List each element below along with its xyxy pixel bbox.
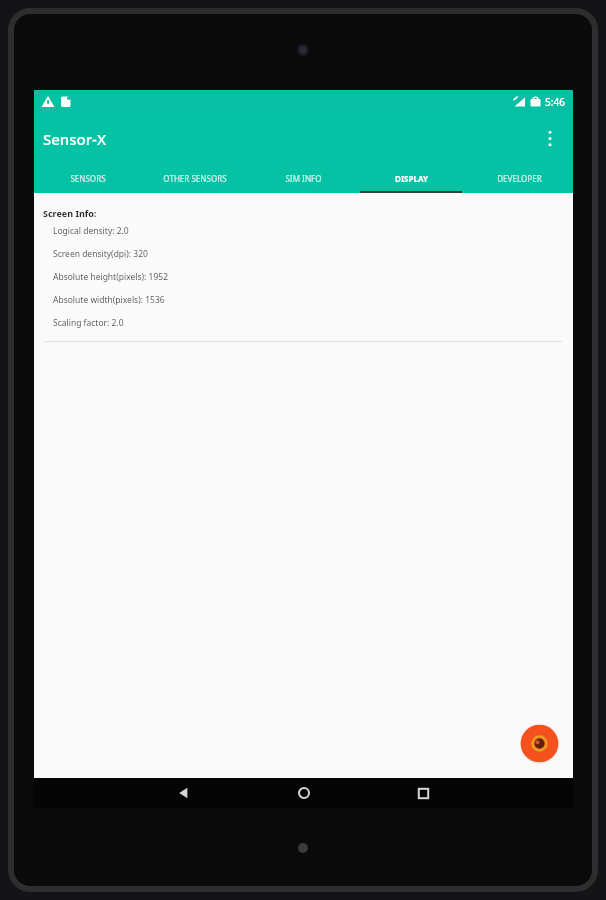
button[interactable]: Absolute width(pixels): 1536 (34, 288, 573, 311)
button[interactable]: Absolute height(pixels): 1952 (34, 265, 573, 288)
staticText: Scaling factor: 2.0 (53, 317, 124, 329)
button[interactable]: DISPLAY (357, 163, 465, 193)
button[interactable]: Recent apps (406, 778, 440, 808)
button[interactable]: More options (533, 121, 567, 155)
staticText: Absolute height(pixels): 1952 (53, 271, 169, 283)
staticText: SENSORS (70, 173, 106, 184)
button[interactable]: SENSORS (34, 163, 141, 193)
staticText: OTHER SENSORS (163, 173, 227, 184)
staticText: SIM INFO (285, 173, 322, 184)
button[interactable]: OTHER SENSORS (141, 163, 249, 193)
button[interactable]: DEVELOPER (465, 163, 573, 193)
button[interactable]: SIM INFO (249, 163, 357, 193)
staticText: DEVELOPER (497, 173, 542, 184)
staticText: Logical density: 2.0 (53, 225, 129, 237)
staticText: Screen Info: (43, 207, 97, 219)
staticText: Screen density(dpi): 320 (53, 248, 148, 260)
staticText: 5:46 (545, 95, 565, 109)
button[interactable]: Home (287, 778, 321, 808)
staticText: Sensor-X (43, 129, 107, 149)
button[interactable]: Back (167, 778, 201, 808)
button[interactable]: Refresh sensors (519, 723, 560, 764)
staticText: Absolute width(pixels): 1536 (53, 294, 165, 306)
staticText: DISPLAY (395, 173, 428, 184)
button[interactable]: Screen density(dpi): 320 (34, 242, 573, 265)
button[interactable]: Scaling factor: 2.0 (34, 311, 573, 334)
button[interactable]: Logical density: 2.0 (34, 219, 573, 242)
